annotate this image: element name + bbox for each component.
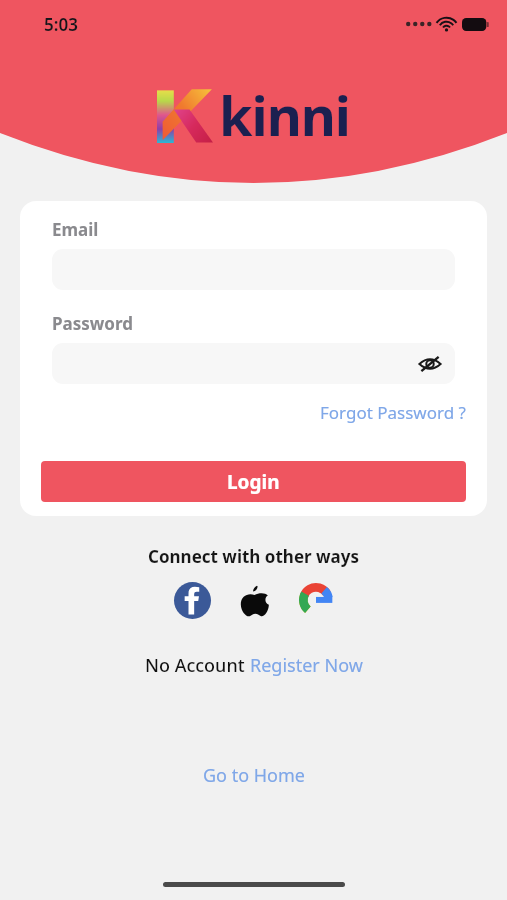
button[interactable]: Show password [415,349,445,379]
staticText: Connect with other ways [148,545,360,568]
button[interactable]: Go to Home [203,763,305,788]
button[interactable]: Forgot Password ? [320,401,466,424]
button[interactable]: Sign in with Google [294,578,338,622]
button[interactable]: Login [41,461,466,502]
staticText: 5:03 [44,13,78,36]
button[interactable]: Sign in with Apple [232,578,276,622]
staticText: Password [52,312,133,335]
button[interactable]: Register Now [250,653,363,678]
staticText: No Account [145,653,250,678]
staticText: Email [52,218,99,241]
button[interactable]: Show password [52,343,455,384]
button[interactable]: Sign in with Facebook [170,578,214,622]
staticText: kinni [219,78,350,152]
staticText: Go to Home [203,763,305,788]
staticText: Login [227,469,280,495]
